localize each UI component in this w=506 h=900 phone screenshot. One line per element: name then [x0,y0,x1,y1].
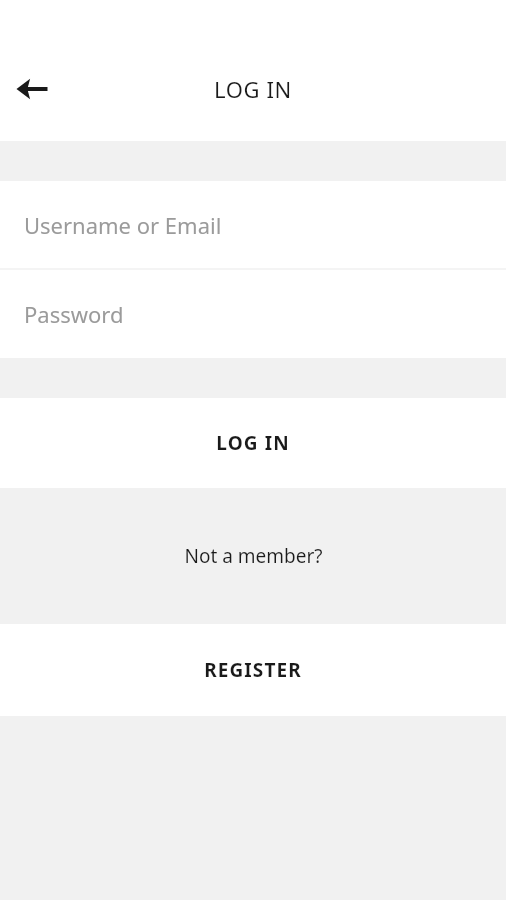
staticText: LOG IN [216,430,290,456]
button[interactable]: LOG IN [0,398,506,488]
staticText: REGISTER [204,657,302,683]
button[interactable]: REGISTER [0,624,506,716]
staticText: Username or Email [24,210,222,240]
button[interactable]: Back [8,65,56,113]
staticText: Not a member? [184,543,323,569]
button[interactable]: Password [0,270,506,358]
staticText: Password [24,299,124,329]
button[interactable]: Username or Email [0,181,506,268]
staticText: LOG IN [214,74,292,104]
